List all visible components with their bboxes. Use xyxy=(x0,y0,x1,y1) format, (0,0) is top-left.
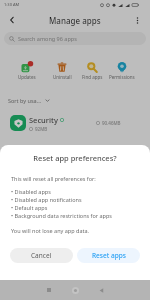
button[interactable]: Search among 96 apps xyxy=(4,32,146,45)
button[interactable]: Home xyxy=(66,281,84,299)
button[interactable]: Security xyxy=(10,110,121,136)
button[interactable]: Back xyxy=(92,281,110,299)
staticText: • Background data restrictions for apps xyxy=(11,212,113,219)
staticText: Reset apps xyxy=(92,251,126,260)
button[interactable]: Updates xyxy=(11,58,43,80)
button[interactable]: More options xyxy=(129,12,145,28)
staticText: Find apps xyxy=(82,74,103,80)
staticText: Uninstall xyxy=(53,74,72,80)
button[interactable]: Uninstall xyxy=(46,58,78,80)
staticText: 1:30 AM xyxy=(4,2,20,7)
button[interactable]: Sort by usa... xyxy=(6,95,52,106)
staticText: Updates xyxy=(18,74,36,80)
staticText: 92MB xyxy=(35,126,48,132)
staticText: Search among 96 apps xyxy=(18,35,77,42)
staticText: Cancel xyxy=(31,251,52,260)
staticText: You will not lose any app data. xyxy=(11,227,90,234)
button[interactable]: Cancel xyxy=(10,248,73,263)
staticText: This will reset all preferences for: xyxy=(11,175,96,182)
button[interactable]: Find apps xyxy=(76,58,108,80)
staticText: • Disabled app notifications xyxy=(11,196,82,203)
staticText: • Default apps xyxy=(11,204,48,211)
staticText: • Disabled apps xyxy=(11,188,51,195)
staticText: Permissions xyxy=(109,74,135,80)
button[interactable]: Recents xyxy=(40,281,58,299)
button[interactable]: Reset apps xyxy=(77,248,140,263)
button[interactable]: Permissions xyxy=(106,58,138,80)
staticText: Security xyxy=(29,115,58,125)
staticText: Reset app preferences? xyxy=(0,153,150,163)
staticText: Manage apps xyxy=(49,15,101,26)
staticText: Sort by usa... xyxy=(8,97,42,104)
staticText: 90.46MB xyxy=(102,120,121,126)
button[interactable]: Back xyxy=(4,12,20,28)
